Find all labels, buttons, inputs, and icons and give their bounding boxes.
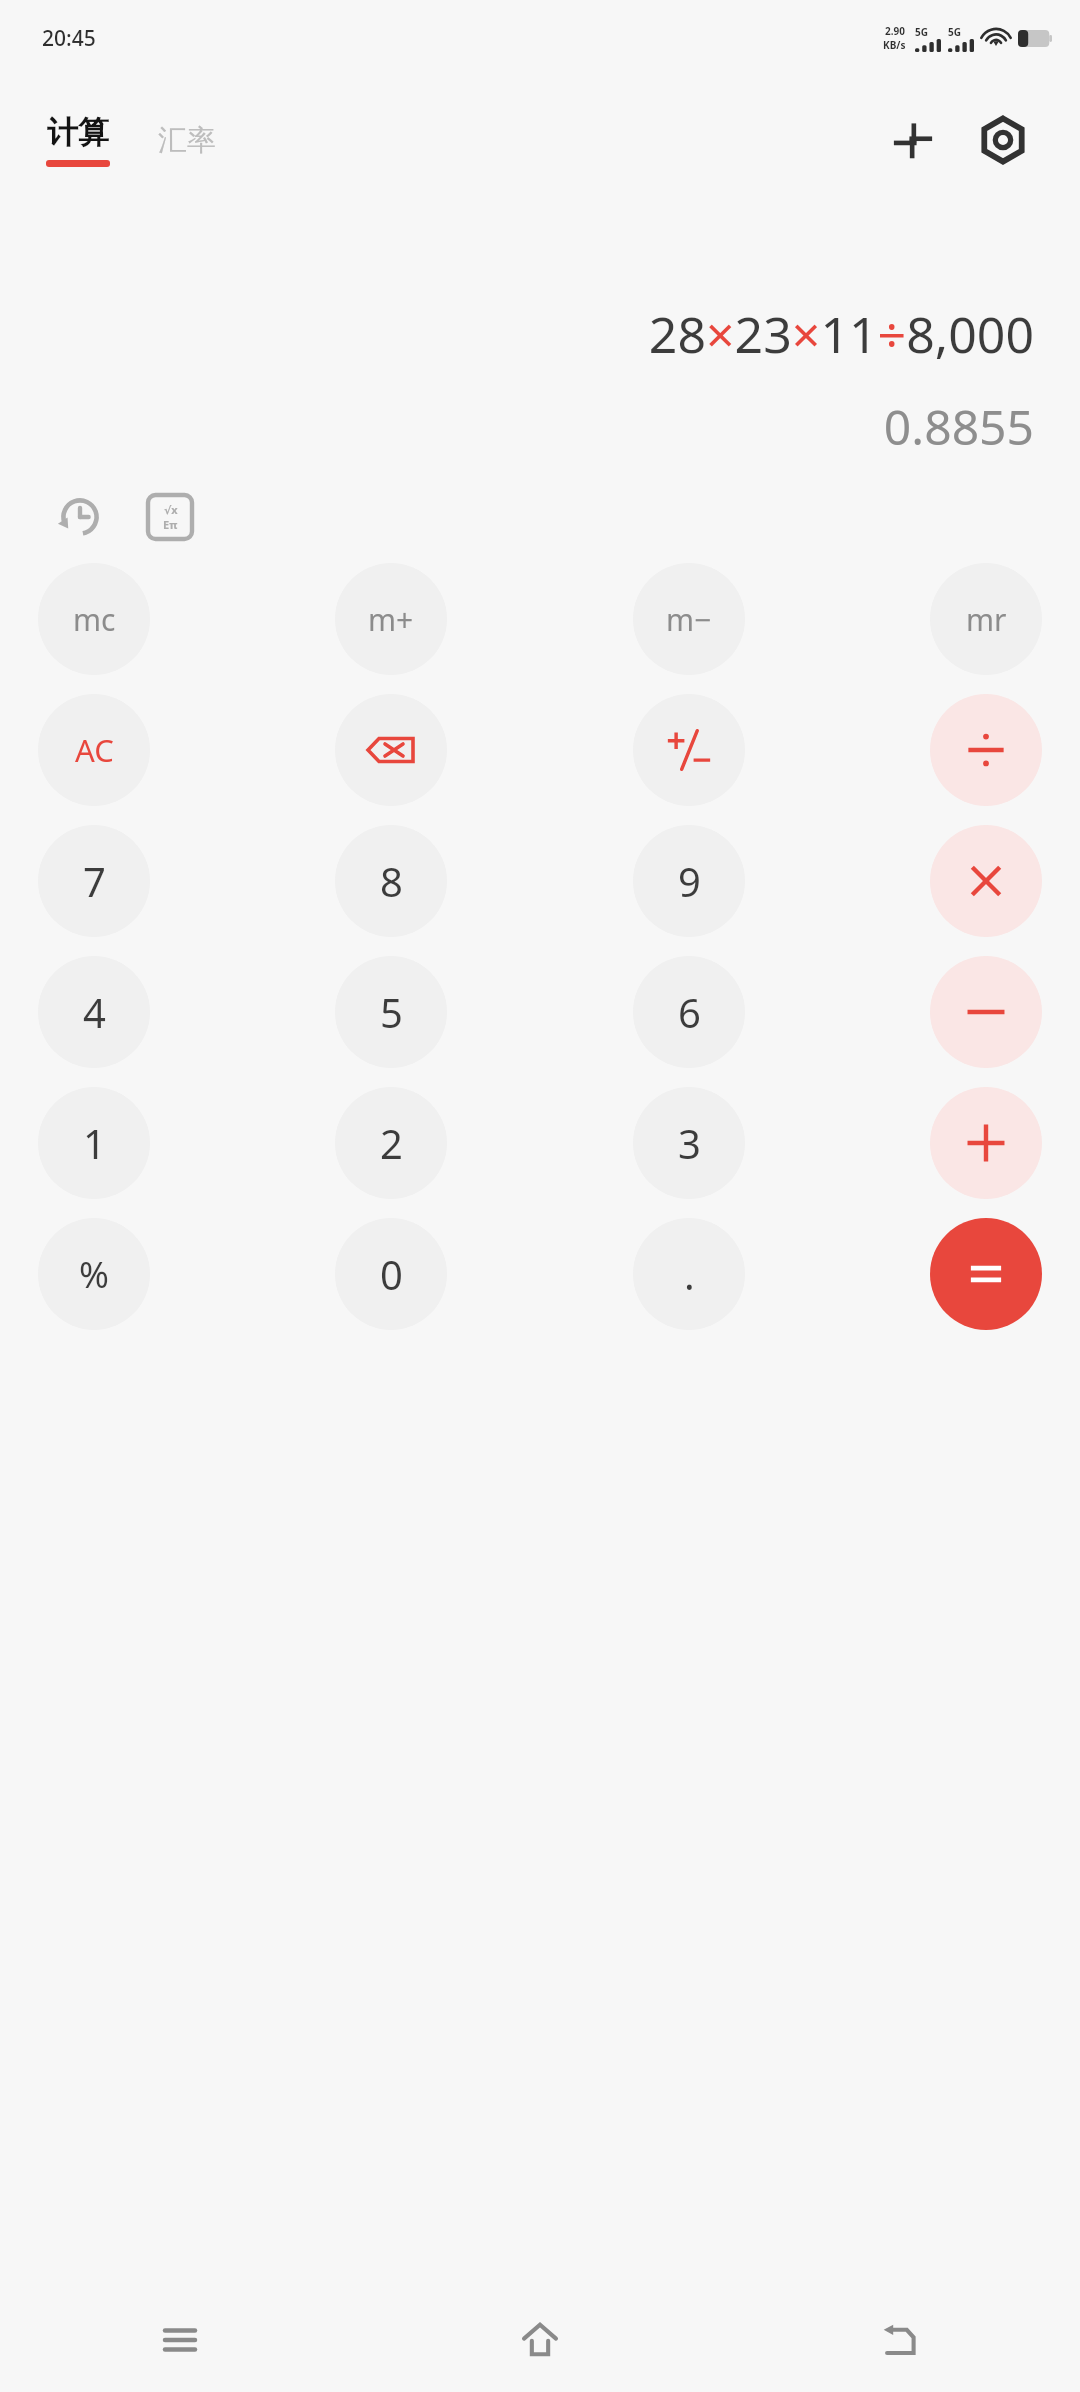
button[interactable]: mc bbox=[38, 563, 150, 675]
button[interactable]: 8 bbox=[335, 825, 447, 937]
button[interactable]: Collapse bbox=[878, 105, 948, 175]
staticText: 0 bbox=[380, 1247, 403, 1301]
staticText: mr bbox=[966, 599, 1007, 640]
button[interactable]: m− bbox=[633, 563, 745, 675]
button[interactable]: m+ bbox=[335, 563, 447, 675]
button[interactable]: 7 bbox=[38, 825, 150, 937]
button[interactable]: Equals bbox=[930, 1218, 1042, 1330]
staticText: 3 bbox=[678, 1116, 701, 1170]
button[interactable]: 4 bbox=[38, 956, 150, 1068]
staticText: 汇率 bbox=[158, 122, 216, 159]
button[interactable]: Home bbox=[492, 2292, 588, 2388]
staticText: 8 bbox=[380, 854, 403, 908]
button[interactable]: History bbox=[48, 485, 112, 549]
button[interactable]: Back bbox=[852, 2292, 948, 2388]
button[interactable]: . bbox=[633, 1218, 745, 1330]
button[interactable]: Backspace bbox=[335, 694, 447, 806]
button[interactable]: AC bbox=[38, 694, 150, 806]
button[interactable]: 计算 bbox=[44, 109, 112, 171]
staticText: 2 bbox=[380, 1116, 403, 1170]
staticText: 4 bbox=[83, 985, 106, 1039]
button[interactable]: 3 bbox=[633, 1087, 745, 1199]
button[interactable]: Minus bbox=[930, 956, 1042, 1068]
staticText: mc bbox=[73, 599, 116, 640]
staticText: √x bbox=[164, 502, 178, 517]
button[interactable]: mr bbox=[930, 563, 1042, 675]
button[interactable]: Multiply bbox=[930, 825, 1042, 937]
staticText: 计算 bbox=[47, 113, 109, 152]
button[interactable]: 5 bbox=[335, 956, 447, 1068]
button[interactable]: 汇率 bbox=[156, 110, 218, 171]
staticText: 5G bbox=[948, 25, 961, 39]
staticText: 20:45 bbox=[42, 24, 96, 53]
staticText: % bbox=[79, 1250, 109, 1299]
staticText: . bbox=[684, 1247, 695, 1301]
button[interactable]: 1 bbox=[38, 1087, 150, 1199]
staticText: AC bbox=[75, 729, 114, 771]
button[interactable]: 2 bbox=[335, 1087, 447, 1199]
staticText: 5G bbox=[915, 25, 928, 39]
button[interactable]: Settings bbox=[968, 105, 1038, 175]
staticText: 7 bbox=[83, 854, 106, 908]
staticText: 0.8855 bbox=[883, 394, 1034, 459]
button[interactable]: 9 bbox=[633, 825, 745, 937]
button[interactable]: 0 bbox=[335, 1218, 447, 1330]
button[interactable]: Toggle sign bbox=[633, 694, 745, 806]
staticText: 9 bbox=[678, 854, 701, 908]
staticText: m− bbox=[666, 599, 712, 640]
button[interactable]: Scientific mode bbox=[138, 485, 202, 549]
staticText: m+ bbox=[368, 599, 414, 640]
staticText: 1 bbox=[83, 1116, 106, 1170]
staticText: KB/s bbox=[883, 38, 906, 52]
staticText: 6 bbox=[678, 985, 701, 1039]
button[interactable]: Divide bbox=[930, 694, 1042, 806]
button[interactable]: Recents bbox=[132, 2292, 228, 2388]
staticText: Eπ bbox=[163, 517, 178, 532]
button[interactable]: Plus bbox=[930, 1087, 1042, 1199]
staticText: 2.90 bbox=[885, 24, 905, 38]
button[interactable]: 6 bbox=[633, 956, 745, 1068]
staticText: 28×23×11÷8,000 bbox=[648, 300, 1034, 368]
button[interactable]: % bbox=[38, 1218, 150, 1330]
staticText: 5 bbox=[380, 985, 403, 1039]
